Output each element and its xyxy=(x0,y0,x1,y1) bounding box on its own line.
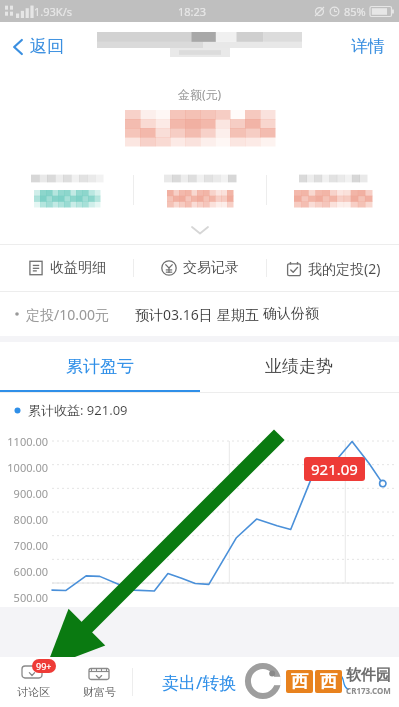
staticText: 921.09 xyxy=(311,459,358,479)
staticText: 500.00 xyxy=(0,590,48,605)
staticText: 预计03.16日 xyxy=(135,305,217,324)
staticText: 讨论区 xyxy=(17,685,50,699)
staticText: 900.00 xyxy=(0,486,48,501)
staticText: 西 xyxy=(320,671,337,692)
staticText: 买入 xyxy=(316,672,350,693)
button[interactable]: 我的定投(2) xyxy=(267,249,399,288)
button[interactable]: 收益明细 xyxy=(0,249,133,287)
button[interactable]: 财富号 xyxy=(66,657,132,707)
staticText: 详情 xyxy=(351,36,385,57)
staticText: 我的定投(2) xyxy=(308,259,381,278)
button[interactable]: 业绩走势 xyxy=(199,342,399,390)
staticText: 软件园 xyxy=(346,666,391,685)
staticText: 返回 xyxy=(30,36,64,57)
staticText: 600.00 xyxy=(0,564,48,579)
staticText: 99+ xyxy=(36,660,52,672)
staticText: 星期五 xyxy=(217,305,263,324)
staticText: 西 xyxy=(291,671,308,692)
staticText: 1100.00 xyxy=(0,434,48,449)
staticText: 定投/10.00元 xyxy=(26,305,109,324)
staticText: 收益明细 xyxy=(50,259,106,277)
staticText: 18:23 xyxy=(178,4,207,19)
staticText: 财富号 xyxy=(83,685,116,699)
button[interactable]: 定投/10.00元 xyxy=(0,292,399,336)
button[interactable]: 99+ xyxy=(0,657,66,707)
staticText: 交易记录 xyxy=(183,259,239,277)
staticText: 700.00 xyxy=(0,538,48,553)
staticText: 累计收益: 921.09 xyxy=(28,401,128,419)
button[interactable]: 卖出/转换 xyxy=(133,657,266,707)
staticText: 85% xyxy=(344,4,366,19)
staticText: 卖出/转换 xyxy=(162,671,237,694)
staticText: 1.93K/s xyxy=(34,4,72,19)
button[interactable]: 交易记录 xyxy=(134,249,266,287)
staticText: 确认份额 xyxy=(263,305,319,323)
button[interactable]: 详情 xyxy=(337,26,399,67)
staticText: 800.00 xyxy=(0,512,48,527)
staticText: 累计盈亏 xyxy=(66,356,134,377)
button[interactable]: 买入 xyxy=(266,657,399,707)
staticText: CR173.COM xyxy=(346,685,391,696)
staticText: 业绩走势 xyxy=(265,356,333,377)
button[interactable]: 累计盈亏 xyxy=(0,342,199,390)
staticText: 金额(元) xyxy=(0,86,399,102)
button[interactable]: 返回 xyxy=(0,28,76,65)
staticText: 1000.00 xyxy=(0,460,48,475)
